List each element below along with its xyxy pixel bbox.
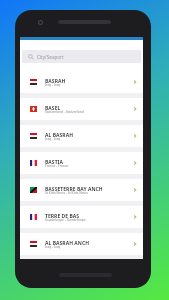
staticText: TERRE DE BAS (45, 213, 80, 220)
staticText: City/Seaport (37, 54, 64, 60)
staticText: Switzerland - Switzerland (45, 109, 84, 113)
staticText: Iraq - Iraq (45, 82, 61, 86)
staticText: Guadeloupe - Guadeloupe (45, 217, 86, 221)
staticText: BASSETERRE BAY ANCH (45, 186, 103, 193)
other: Open details (132, 160, 138, 166)
staticText: St Kitts Nevis - St Kitts Nevis (45, 190, 88, 194)
button[interactable]: BASSETERRE BAY ANCH (20, 179, 143, 201)
staticText: BASRAH (45, 78, 66, 85)
other: Open details (132, 214, 138, 220)
staticText: BASEL (45, 105, 61, 112)
staticText: AL BASRAH (45, 132, 74, 139)
button[interactable]: TERRE DE BAS (20, 206, 143, 228)
other: Open details (132, 241, 138, 247)
staticText: BASTIA (45, 159, 64, 166)
other: Open details (132, 79, 138, 85)
button[interactable]: City/Seaport (22, 50, 141, 63)
button[interactable]: AL BASRAH (20, 125, 143, 147)
staticText: Iraq - Iraq (45, 136, 61, 140)
other: Open details (132, 133, 138, 139)
other: Open details (132, 106, 138, 112)
staticText: Iraq - Iraq (45, 244, 61, 248)
button[interactable]: BASRAH (20, 71, 143, 93)
other: Open details (132, 187, 138, 193)
button[interactable]: AL BASRAH ANCH (20, 233, 143, 255)
staticText: AL BASRAH ANCH (45, 240, 90, 247)
button[interactable]: BASEL (20, 98, 143, 120)
button[interactable]: BASTIA (20, 152, 143, 174)
staticText: France - France (45, 163, 69, 167)
